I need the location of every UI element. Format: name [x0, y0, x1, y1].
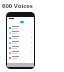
button[interactable]: [7, 35, 34, 40]
button[interactable]: [7, 40, 34, 45]
button[interactable]: [7, 50, 34, 55]
staticText: 600 Voices: [2, 2, 33, 10]
button[interactable]: Filter: [20, 21, 24, 23]
button[interactable]: [7, 55, 34, 60]
button[interactable]: [7, 45, 34, 50]
button[interactable]: [7, 25, 34, 30]
button[interactable]: [7, 30, 34, 35]
